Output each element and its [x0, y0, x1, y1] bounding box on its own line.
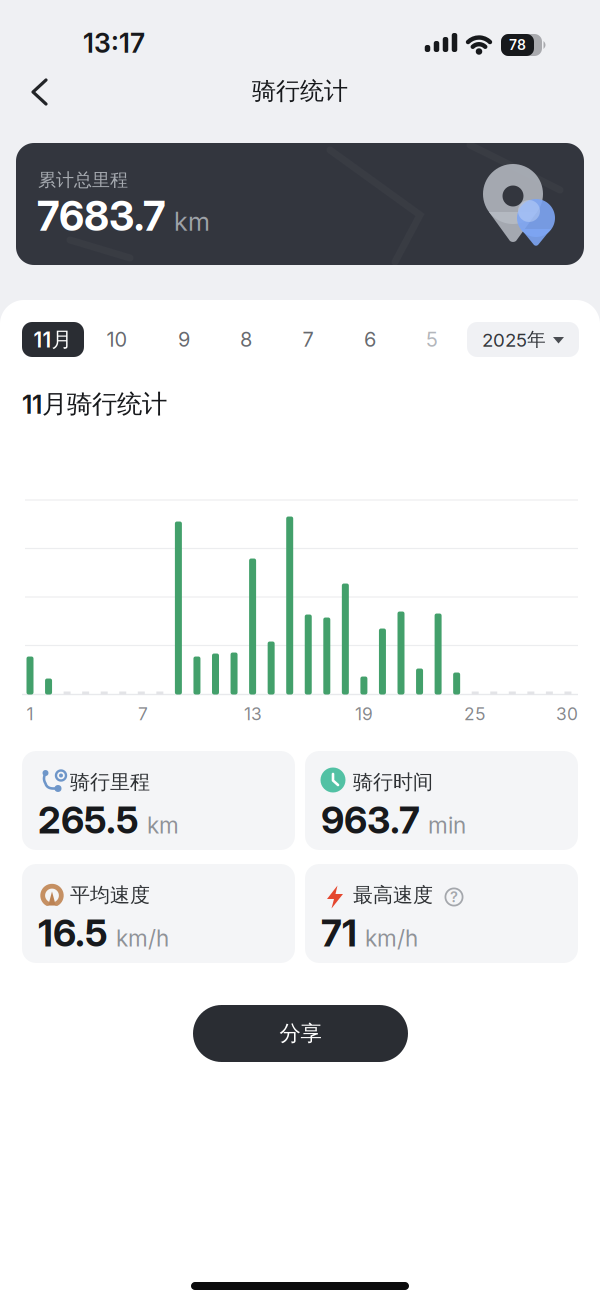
staticText: 累计总里程	[38, 169, 128, 191]
staticText: 最高速度	[353, 882, 433, 908]
staticText: 7683.7	[37, 191, 165, 241]
staticText: 平均速度	[70, 882, 150, 908]
staticText: 2025年	[482, 328, 546, 351]
button[interactable]: 10	[106, 327, 127, 352]
button[interactable]: 5	[426, 327, 438, 352]
staticText: 9	[178, 327, 190, 352]
staticText: 19	[355, 703, 373, 724]
staticText: 71	[321, 910, 357, 956]
button[interactable]: 分享	[193, 1005, 408, 1062]
staticText: 13:17	[83, 27, 145, 59]
staticText: ?	[450, 888, 458, 906]
staticText: 30	[556, 703, 578, 724]
staticText: 1	[26, 703, 33, 724]
staticText: 78	[509, 36, 526, 53]
staticText: km	[147, 812, 179, 839]
button[interactable]: 6	[364, 327, 376, 352]
staticText: 分享	[279, 1020, 321, 1047]
staticText: 7	[138, 703, 148, 724]
button[interactable]: 平均速度	[22, 864, 295, 963]
staticText: 7	[302, 327, 313, 352]
staticText: 10	[106, 327, 127, 352]
staticText: 11月	[33, 326, 72, 352]
staticText: min	[428, 812, 466, 839]
staticText: 8	[240, 327, 252, 352]
staticText: 6	[364, 327, 376, 352]
staticText: 骑行里程	[70, 769, 150, 795]
staticText: km/h	[116, 925, 169, 952]
button[interactable]: 骑行时间	[305, 751, 578, 850]
staticText: 963.7	[321, 797, 420, 843]
button[interactable]	[19, 70, 63, 114]
staticText: 5	[426, 327, 438, 352]
button[interactable]: 9	[178, 327, 190, 352]
staticText: 骑行时间	[353, 769, 433, 795]
button[interactable]: 8	[240, 327, 252, 352]
staticText: 25	[464, 703, 486, 724]
staticText: 11月骑行统计	[22, 388, 167, 420]
button[interactable]: 最高速度	[305, 864, 578, 963]
staticText: 16.5	[38, 910, 108, 956]
button[interactable]: 骑行里程	[22, 751, 295, 850]
button[interactable]: 2025年	[467, 322, 579, 357]
staticText: 265.5	[38, 797, 139, 843]
button[interactable]: 11月	[22, 322, 84, 357]
staticText: 13	[244, 703, 262, 724]
staticText: km/h	[365, 925, 418, 952]
staticText: 骑行统计	[252, 76, 348, 106]
button[interactable]: 7	[302, 327, 313, 352]
staticText: km	[174, 206, 210, 237]
